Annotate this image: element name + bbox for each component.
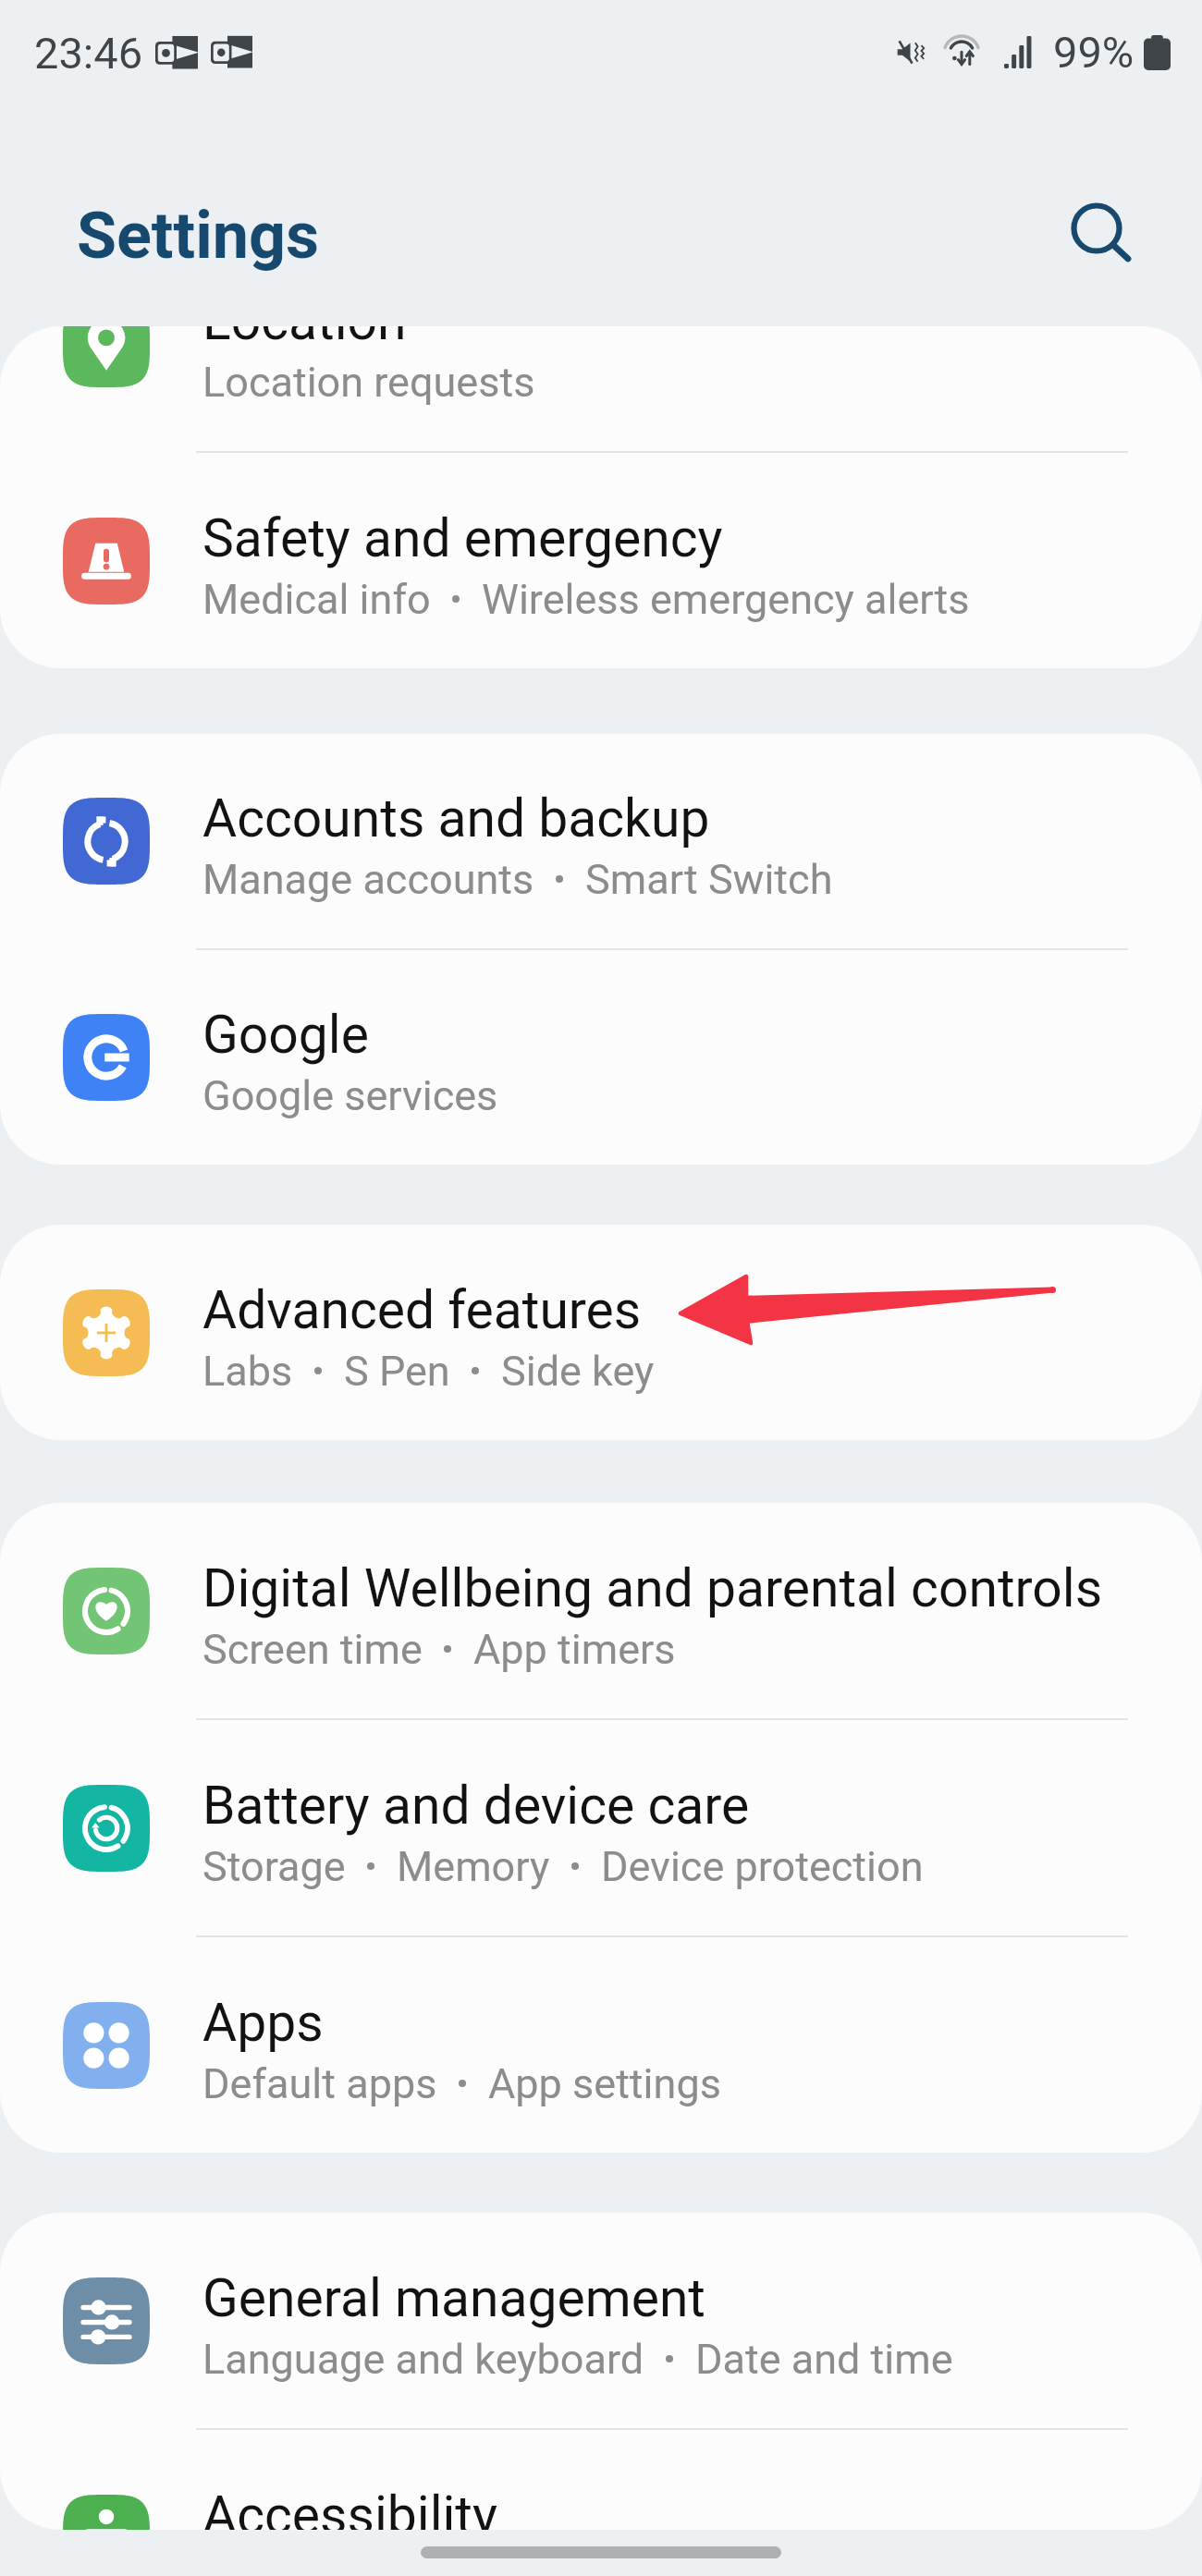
staticText: Settings [77, 198, 319, 274]
staticText: Screen time [202, 1625, 423, 1674]
staticText: Apps [202, 1992, 324, 2054]
staticText: Google [202, 1004, 369, 1066]
button[interactable]: Location [0, 326, 1202, 451]
staticText: 99% [1053, 27, 1135, 78]
button[interactable]: Google [0, 950, 1202, 1165]
button[interactable]: Search [1049, 183, 1159, 292]
staticText: Default apps [202, 2059, 437, 2108]
staticText: Labs [202, 1347, 293, 1396]
staticText: Medical info [202, 575, 431, 624]
staticText: Accessibility [202, 2484, 497, 2530]
staticText: Google services [202, 1071, 498, 1120]
button[interactable]: Digital Wellbeing and parental controls [0, 1503, 1202, 1718]
staticText: App timers [473, 1625, 676, 1674]
staticText: Side key [501, 1347, 655, 1396]
staticText: Advanced features [202, 1279, 642, 1341]
staticText: Language and keyboard [202, 2335, 644, 2384]
staticText: Manage accounts [202, 855, 534, 904]
button[interactable]: General management [0, 2213, 1202, 2428]
staticText: 23:46 [34, 28, 143, 79]
staticText: Location requests [202, 358, 535, 407]
staticText: Accounts and backup [202, 787, 710, 849]
button[interactable]: Accessibility [0, 2430, 1202, 2530]
staticText: Digital Wellbeing and parental controls [202, 1557, 1103, 1619]
staticText: Battery and device care [202, 1775, 750, 1837]
staticText: Date and time [695, 2335, 953, 2384]
staticText: Memory [397, 1842, 550, 1891]
staticText: Safety and emergency [202, 507, 723, 569]
button[interactable]: Accounts and backup [0, 734, 1202, 948]
staticText: General management [202, 2267, 706, 2329]
button[interactable]: Battery and device care [0, 1720, 1202, 1935]
button[interactable]: Apps [0, 1937, 1202, 2153]
staticText: Wireless emergency alerts [482, 575, 970, 624]
staticText: Storage [202, 1842, 346, 1891]
staticText: Smart Switch [585, 855, 833, 904]
button[interactable]: Advanced features [0, 1225, 1202, 1440]
button[interactable]: Safety and emergency [0, 453, 1202, 668]
staticText: Location [202, 326, 407, 352]
staticText: App settings [488, 2059, 721, 2108]
staticText: Device protection [601, 1842, 924, 1891]
staticText: S Pen [344, 1347, 450, 1396]
